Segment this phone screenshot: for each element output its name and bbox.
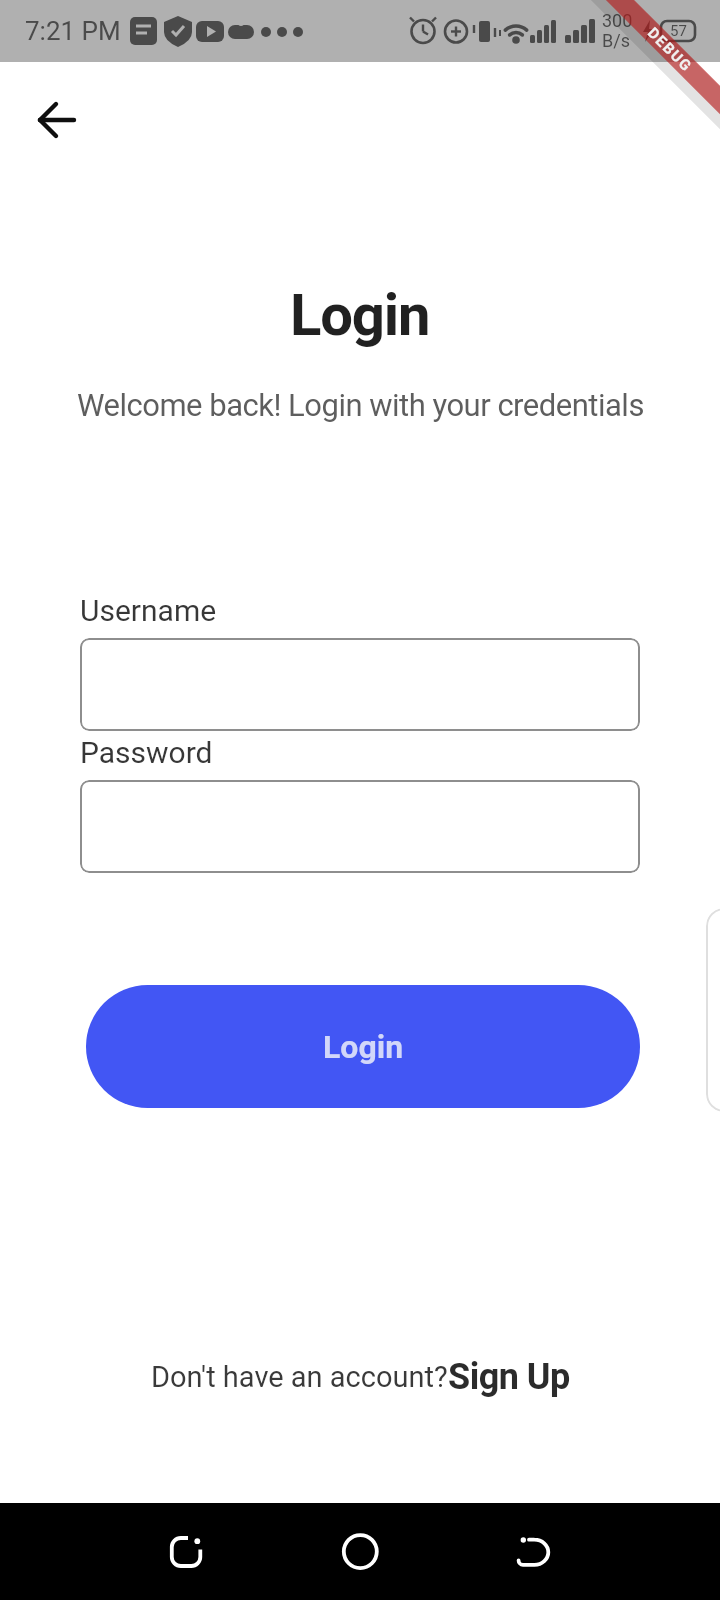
staticText: 300 B/s [602, 10, 633, 51]
staticText: Password [80, 735, 213, 770]
staticText: 7:21 PM [25, 16, 121, 46]
staticText: Welcome back! Login with your credential… [77, 387, 644, 423]
staticText: Sign Up [448, 1356, 570, 1398]
staticText: Login [290, 281, 430, 349]
staticText: Don't have an account? [151, 1360, 448, 1394]
staticText: Login [323, 1028, 404, 1066]
staticText: 57 [670, 22, 687, 40]
staticText: DEBUG [644, 24, 696, 76]
staticText: Username [80, 593, 217, 628]
